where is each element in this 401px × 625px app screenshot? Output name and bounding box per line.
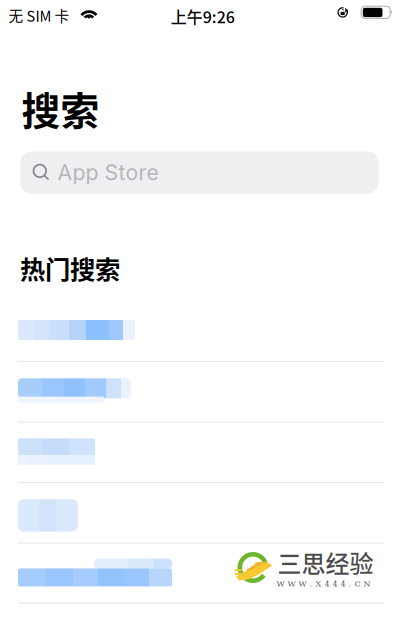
staticText: 热门搜索: [20, 249, 120, 286]
button[interactable]: 搜索: [21, 80, 99, 136]
staticText: W W W . X 4 4 4 . C N: [276, 579, 370, 588]
staticText: 搜索: [21, 80, 99, 136]
button[interactable]: App Store: [20, 151, 378, 193]
staticText: 上午9:26: [171, 5, 235, 28]
staticText: App Store: [57, 160, 158, 185]
staticText: 三思经验: [277, 545, 373, 580]
staticText: 无 SIM 卡: [9, 5, 70, 26]
